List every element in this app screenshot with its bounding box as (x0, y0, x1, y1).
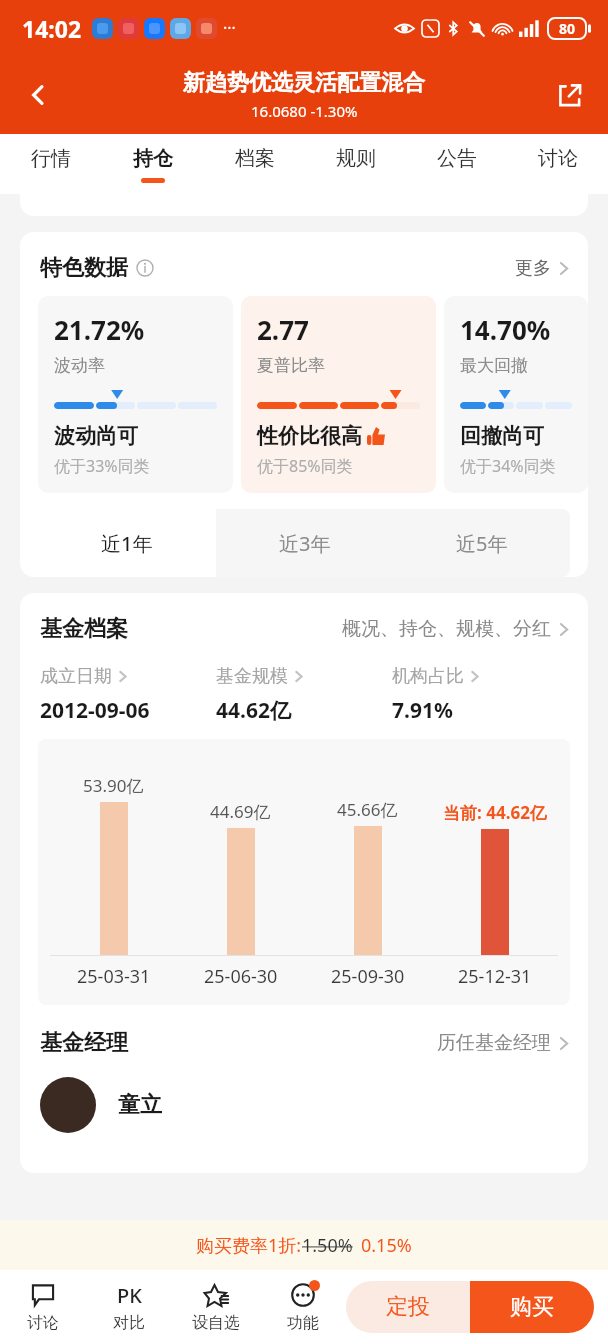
staticText: 基金规模 (216, 665, 288, 688)
staticText: 回撤尚可 (460, 423, 544, 449)
staticText: 0.15% (361, 1233, 412, 1258)
staticText: 25-09-30 (331, 964, 405, 989)
staticText: 45.66亿 (337, 798, 398, 821)
staticText: 讨论 (27, 1313, 59, 1333)
staticText: 25-03-31 (77, 964, 151, 989)
button[interactable]: 21.72% (38, 296, 233, 493)
staticText: 14.70% (460, 312, 551, 347)
staticText: 机构占比 (392, 665, 464, 688)
staticText: 持仓 (133, 146, 173, 171)
staticText: 44.69亿 (210, 800, 271, 823)
staticText: 功能 (287, 1313, 319, 1333)
button[interactable]: 讨论 (507, 134, 608, 194)
staticText: 25-12-31 (458, 964, 532, 989)
button[interactable]: 基金规模 (216, 665, 392, 725)
button[interactable]: 购买 (470, 1281, 594, 1333)
staticText: PK (117, 1282, 142, 1308)
button[interactable]: 行情 (0, 134, 102, 194)
staticText: 最大回撤 (460, 355, 528, 376)
button[interactable]: 讨论 (0, 1270, 86, 1344)
staticText: 44.62亿 (216, 696, 291, 725)
button[interactable]: 公告 (406, 134, 507, 194)
staticText: 更多 (515, 257, 551, 280)
staticText: 2012-09-06 (40, 696, 150, 725)
button[interactable]: Share (546, 71, 594, 119)
button[interactable]: 定投 (346, 1281, 470, 1333)
staticText: 优于33%同类 (54, 455, 150, 477)
button[interactable]: PK (86, 1270, 172, 1344)
staticText: 购买 (510, 1293, 554, 1321)
button[interactable]: 持仓 (102, 134, 204, 194)
button[interactable]: 规则 (305, 134, 406, 194)
staticText: 性价比很高 (257, 423, 362, 449)
staticText: 历任基金经理 (437, 1031, 551, 1055)
staticText: 优于34%同类 (460, 455, 556, 477)
staticText: 2.77 (257, 312, 309, 347)
staticText: 讨论 (538, 146, 578, 171)
button[interactable]: 近1年 (38, 509, 216, 577)
staticText: 53.90亿 (83, 774, 144, 797)
staticText: 近3年 (279, 530, 331, 557)
staticText: 夏普比率 (257, 355, 325, 376)
staticText: 公告 (437, 146, 477, 171)
staticText: 25-06-30 (204, 964, 278, 989)
button[interactable]: 档案 (204, 134, 305, 194)
button[interactable]: Back (14, 71, 62, 119)
button[interactable]: 成立日期 (40, 665, 216, 725)
staticText: 80 (559, 19, 576, 38)
staticText: 行情 (31, 146, 71, 171)
button[interactable]: 近3年 (216, 509, 393, 577)
staticText: 14:02 (22, 13, 82, 44)
staticText: ··· (223, 17, 236, 39)
staticText: 定投 (386, 1293, 430, 1321)
staticText: 对比 (113, 1313, 145, 1333)
button[interactable]: 14.70% (444, 296, 588, 493)
staticText: 21.72% (54, 312, 145, 347)
button[interactable]: 概况、持仓、规模、分红 (342, 617, 570, 641)
button[interactable]: 更多 (515, 257, 570, 280)
staticText: 近5年 (456, 530, 508, 557)
button[interactable]: 近5年 (393, 509, 570, 577)
staticText: 购买费率1折: (196, 1233, 302, 1258)
staticText: 波动率 (54, 355, 105, 376)
staticText: 新趋势优选灵活配置混合 (183, 69, 425, 97)
staticText: 近1年 (101, 530, 153, 557)
staticText: 1.50% (302, 1233, 353, 1258)
staticText: 档案 (235, 146, 275, 171)
button[interactable]: 历任基金经理 (437, 1031, 570, 1055)
staticText: 成立日期 (40, 665, 112, 688)
staticText: 规则 (336, 146, 376, 171)
button[interactable]: 机构占比 (392, 665, 568, 725)
staticText: 设自选 (192, 1313, 240, 1333)
staticText: 优于85%同类 (257, 455, 353, 477)
staticText: 特色数据 (40, 254, 128, 282)
staticText: 16.0680 -1.30% (251, 101, 358, 121)
button[interactable]: 设自选 (172, 1270, 259, 1344)
staticText: 基金经理 (40, 1029, 128, 1057)
staticText: 当前: 44.62亿 (443, 801, 547, 824)
staticText: 童立 (118, 1091, 162, 1119)
staticText: 波动尚可 (54, 423, 138, 449)
staticText: 基金档案 (40, 615, 128, 643)
staticText: 概况、持仓、规模、分红 (342, 617, 551, 641)
staticText: 7.91% (392, 696, 453, 725)
button[interactable]: 功能 (259, 1270, 346, 1344)
button[interactable]: 2.77 (241, 296, 436, 493)
